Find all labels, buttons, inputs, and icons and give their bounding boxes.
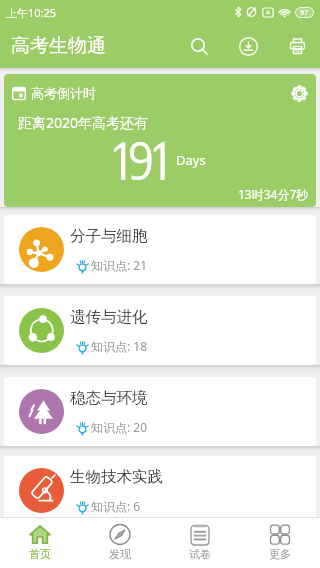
staticText: 试卷 [189, 547, 211, 561]
staticText: 距离2020年高考还有 [18, 113, 149, 132]
button[interactable]: 高考倒计时 [4, 74, 316, 207]
staticText: 191 [114, 128, 169, 191]
staticText: 更多 [269, 547, 291, 561]
staticText: 稳态与环境 [70, 388, 148, 408]
button[interactable] [179, 24, 219, 68]
button[interactable] [228, 24, 268, 68]
staticText: 知识点: 6 [91, 498, 141, 514]
button[interactable]: 首页 [0, 518, 80, 568]
button[interactable]: 发现 [80, 518, 160, 568]
staticText: Days [176, 151, 206, 169]
staticText: 13时34分7秒 [238, 186, 309, 202]
staticText: 高考生物通 [11, 34, 106, 58]
staticText: 知识点: 18 [91, 338, 148, 354]
staticText: 发现 [109, 547, 131, 561]
button[interactable]: 更多 [240, 518, 320, 568]
staticText: 97 [300, 8, 309, 18]
staticText: 首页 [29, 547, 51, 561]
staticText: 知识点: 20 [91, 419, 148, 435]
button[interactable]: 生物技术实践 [4, 456, 316, 525]
button[interactable]: 试卷 [160, 518, 240, 568]
staticText: 分子与细胞 [70, 226, 148, 246]
button[interactable]: 稳态与环境 [4, 377, 316, 446]
staticText: 上午10:25 [6, 5, 57, 20]
staticText: 高考倒计时 [31, 85, 96, 101]
staticText: 知识点: 21 [91, 257, 148, 273]
staticText: 遗传与进化 [70, 307, 148, 327]
button[interactable]: 遗传与进化 [4, 296, 316, 365]
button[interactable] [277, 24, 317, 68]
staticText: 生物技术实践 [70, 467, 163, 487]
button[interactable] [289, 83, 309, 103]
button[interactable]: 分子与细胞 [4, 215, 316, 284]
